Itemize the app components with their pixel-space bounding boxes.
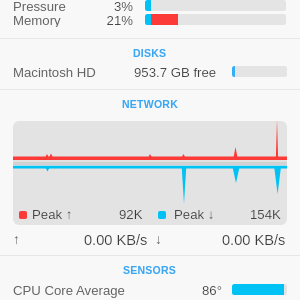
staticText: ↓ [155,232,162,247]
staticText: SENSORS [123,264,177,276]
button[interactable]: Pressure [0,0,300,13]
staticText: Peak ↓ [174,207,215,222]
staticText: 3% [93,0,133,13]
staticText: 0.00 KB/s [84,232,148,248]
button[interactable]: Memory [0,13,300,27]
staticText: Macintosh HD [13,65,96,80]
staticText: Pressure [13,0,66,13]
button[interactable]: CPU Core Average [0,283,300,299]
button[interactable]: Macintosh HD [0,65,300,81]
staticText: 21% [93,13,133,27]
staticText: NETWORK [122,98,178,110]
staticText: 86° [202,283,222,298]
staticText: 953.7 GB free [134,65,217,80]
staticText: Memory [13,13,61,27]
staticText: CPU Core Average [13,283,125,298]
staticText: 92K [119,207,143,222]
staticText: 0.00 KB/s [222,232,286,248]
staticText: 154K [250,207,281,222]
staticText: DISKS [133,47,167,59]
staticText: Peak ↑ [32,207,73,222]
staticText: ↑ [13,232,20,247]
